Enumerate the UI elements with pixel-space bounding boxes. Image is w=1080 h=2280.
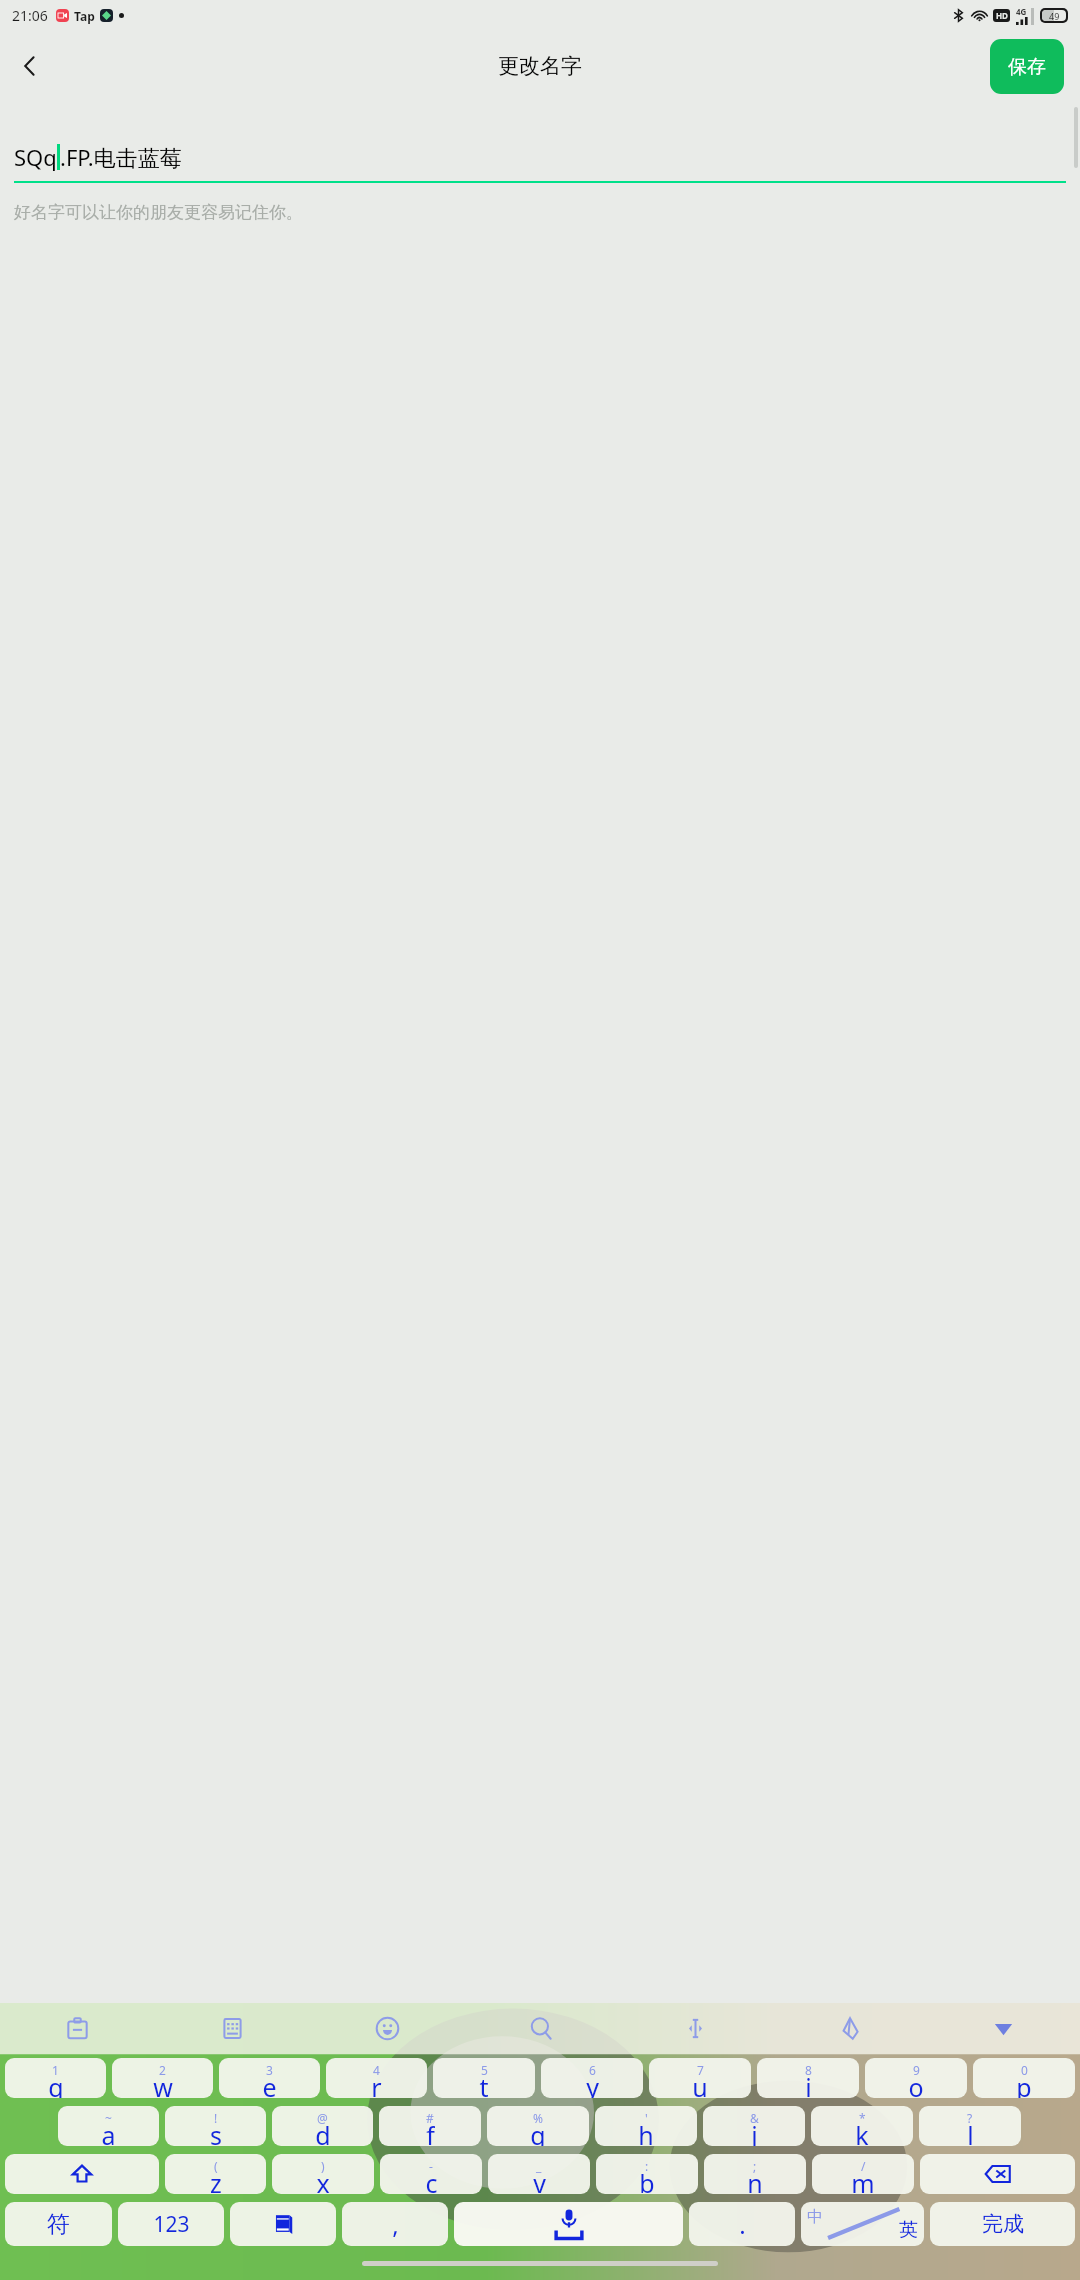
button[interactable]: . [689,2202,795,2246]
button[interactable]: _ [488,2154,590,2194]
staticText: i [805,2070,812,2098]
button[interactable]: : [596,2154,698,2194]
button[interactable]: Keyboard layout [155,2003,310,2054]
button[interactable]: Space [454,2202,683,2246]
button[interactable]: @ [272,2106,373,2146]
button[interactable]: - [380,2154,482,2194]
button[interactable]: 8 [757,2058,859,2098]
staticText: 2 [159,2062,166,2078]
button[interactable]: Theme [772,2003,926,2054]
staticText: h [638,2118,654,2146]
button[interactable]: Back [4,40,56,92]
staticText: ? [967,2110,973,2126]
staticText: k [855,2118,869,2146]
button[interactable]: 123 [118,2202,224,2246]
staticText: : [645,2158,649,2174]
staticText: SQq [14,142,57,172]
staticText: 123 [153,2210,190,2239]
button[interactable]: Backspace [920,2154,1075,2194]
staticText: 好名字可以让你的朋友更容易记住你。 [14,202,303,223]
staticText: 7 [697,2062,704,2078]
button[interactable]: 2 [112,2058,213,2098]
button[interactable]: * [811,2106,913,2146]
staticText: 中 [807,2207,823,2227]
staticText: o [908,2070,924,2098]
button[interactable]: Search [464,2003,618,2054]
staticText: b [639,2166,655,2194]
staticText: .FP.电击蓝莓 [60,142,182,172]
button[interactable]: Cursor move [618,2003,772,2054]
staticText: , [392,2208,399,2241]
button[interactable]: / [812,2154,914,2194]
staticText: q [48,2070,64,2098]
staticText: s [210,2118,222,2146]
staticText: w [153,2070,173,2098]
staticText: v [533,2166,546,2194]
button[interactable]: 0 [973,2058,1075,2098]
button[interactable]: ( [165,2154,266,2194]
staticText: 完成 [982,2211,1024,2237]
button[interactable]: ; [704,2154,806,2194]
button[interactable]: Hide keyboard [926,2003,1080,2054]
staticText: m [851,2166,875,2194]
button[interactable]: ) [272,2154,374,2194]
button[interactable]: 5 [433,2058,535,2098]
staticText: _ [536,2158,542,2174]
staticText: 4 [373,2062,380,2078]
button[interactable]: Shift [5,2154,159,2194]
staticText: HD [996,10,1008,21]
button[interactable]: # [379,2106,481,2146]
staticText: ( [214,2158,218,2174]
staticText: j [751,2118,758,2146]
button[interactable]: ' [595,2106,697,2146]
staticText: & [750,2110,759,2126]
staticText: 英 [899,2218,918,2242]
staticText: t [479,2070,489,2098]
staticText: f [426,2118,435,2146]
staticText: n [747,2166,763,2194]
staticText: x [316,2166,330,2194]
button[interactable]: ? [919,2106,1021,2146]
staticText: # [426,2110,434,2126]
button[interactable]: ! [165,2106,266,2146]
button[interactable]: 完成 [930,2202,1075,2246]
staticText: g [530,2118,546,2146]
button[interactable]: 9 [865,2058,967,2098]
staticText: ! [214,2110,218,2126]
button[interactable]: % [487,2106,589,2146]
staticText: @ [317,2110,328,2126]
button[interactable]: , [342,2202,448,2246]
staticText: 3 [266,2062,273,2078]
staticText: * [859,2110,866,2126]
button[interactable]: 符 [5,2202,112,2246]
staticText: 49 [1049,10,1060,21]
button[interactable]: Emoji [310,2003,464,2054]
button[interactable]: & [703,2106,805,2146]
button[interactable]: 保存 [990,39,1064,94]
staticText: ' [645,2110,648,2126]
staticText: Tap [74,8,95,24]
button[interactable]: Input language [230,2202,336,2246]
staticText: c [425,2166,438,2194]
button[interactable]: Clipboard [0,2003,155,2054]
staticText: e [262,2070,277,2098]
staticText: 4G [1016,6,1027,17]
staticText: d [315,2118,331,2146]
staticText: - [429,2158,433,2174]
staticText: 更改名字 [498,53,582,79]
button[interactable]: 7 [649,2058,751,2098]
staticText: ; [753,2158,757,2174]
staticText: 0 [1021,2062,1028,2078]
button[interactable]: 4 [326,2058,427,2098]
staticText: . [739,2208,746,2241]
staticText: 符 [47,2210,70,2239]
button[interactable]: 3 [219,2058,320,2098]
button[interactable]: 6 [541,2058,643,2098]
button[interactable]: ~ [58,2106,159,2146]
button[interactable]: 1 [5,2058,106,2098]
staticText: l [967,2118,974,2146]
staticText: / [861,2158,866,2174]
button[interactable]: 中 [801,2202,924,2246]
staticText: u [692,2070,708,2098]
staticText: r [371,2070,382,2098]
